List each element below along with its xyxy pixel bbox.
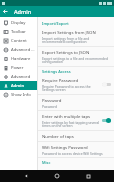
button[interactable]: Number of taps (38, 131, 114, 141)
staticText: Advanced URLs (11, 47, 37, 53)
button[interactable]: Require Password (38, 75, 114, 94)
button[interactable]: Admin (0, 81, 37, 90)
button[interactable]: Display (0, 18, 37, 27)
button[interactable]: Show Info (0, 90, 37, 99)
button[interactable]: Export Settings to JSON (38, 47, 114, 66)
button[interactable]: Advanced (0, 72, 37, 81)
button[interactable]: Enter with multiple taps (38, 111, 114, 130)
button[interactable]: Password (38, 95, 114, 110)
staticText: Password to access device Wifi Settings (42, 151, 103, 155)
staticText: Import settings from a file and recommen… (42, 36, 111, 44)
staticText: Export settings to a file and recommende… (42, 56, 111, 64)
button[interactable]: Power (0, 63, 37, 72)
staticText: Require Password (42, 77, 79, 83)
staticText: Import/Export (42, 21, 69, 26)
button[interactable]: Wifi Settings Password (38, 142, 114, 157)
staticText: Wifi Settings Password (42, 144, 88, 150)
staticText: Toolbar (11, 29, 26, 35)
staticText: Display (11, 20, 26, 26)
staticText: Settings Access (42, 69, 71, 74)
staticText: Power (11, 65, 24, 71)
staticText: Admin (14, 8, 32, 15)
button[interactable]: Toolbar (0, 27, 37, 36)
staticText: Admin (11, 83, 25, 89)
staticText: Password (42, 97, 62, 103)
button[interactable]: Import Settings from JSON (38, 27, 114, 46)
staticText: Advanced (11, 74, 31, 80)
staticText: Import Settings from JSON (42, 29, 96, 35)
button[interactable]: Advanced URLs (0, 45, 37, 54)
button[interactable]: Home (52, 171, 62, 181)
button[interactable]: Navigate up (0, 6, 11, 17)
staticText: Content (11, 38, 27, 44)
staticText: Require Password to access the Settings … (42, 84, 100, 92)
button[interactable]: Back (21, 171, 31, 181)
staticText: Number of taps (42, 133, 74, 139)
staticText: Export Settings to JSON (42, 49, 90, 55)
button[interactable]: Hardware (0, 54, 37, 63)
staticText: Enter with multiple taps (42, 113, 91, 119)
staticText: Password (42, 104, 57, 108)
staticText: Misc (42, 160, 51, 165)
staticText: Hardware (11, 56, 31, 62)
button[interactable]: Recent apps (83, 171, 93, 181)
staticText: Show Info (11, 92, 31, 98)
staticText: Enter settings by fast tapping several t… (42, 120, 100, 128)
button[interactable]: Content (0, 36, 37, 45)
